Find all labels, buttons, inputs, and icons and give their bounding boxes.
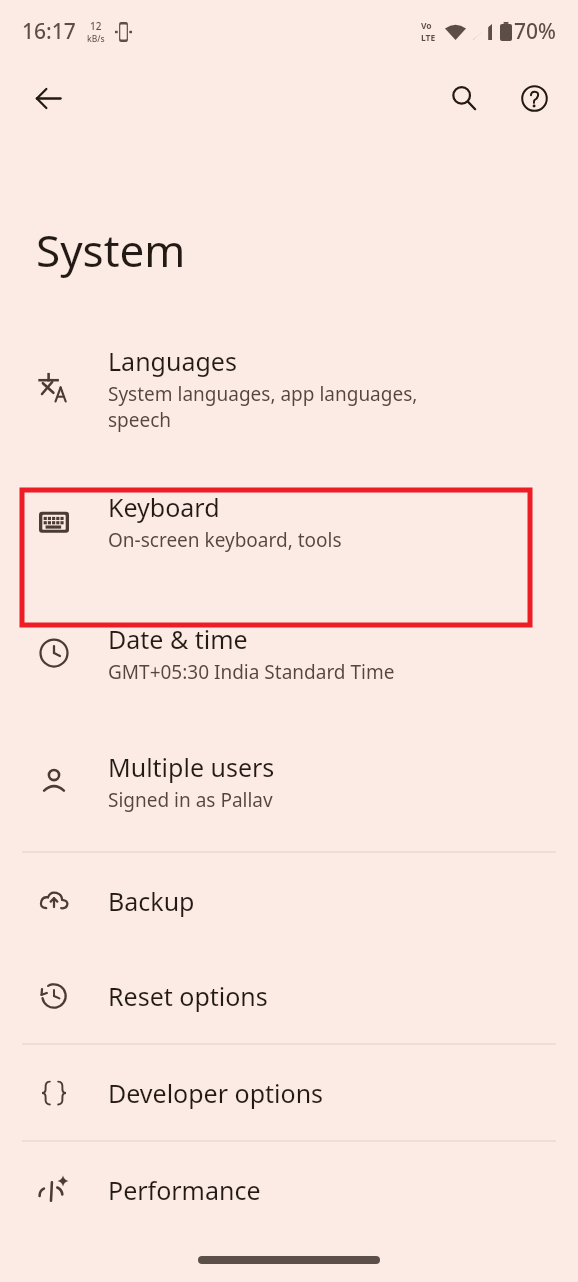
staticText: Developer options	[108, 1076, 324, 1110]
staticText: Performance	[108, 1173, 261, 1207]
staticText: Backup	[108, 884, 195, 918]
staticText: System	[36, 220, 186, 280]
staticText: 16:17	[22, 17, 76, 46]
staticText: GMT+05:30 India Standard Time	[108, 659, 395, 685]
staticText: Vo	[421, 20, 432, 32]
staticText: LTE	[421, 32, 436, 44]
staticText: System languages, app languages, speech	[108, 381, 418, 432]
staticText: Date & time	[108, 622, 248, 656]
button[interactable]: Developer options	[0, 1045, 578, 1140]
button[interactable]: Help	[508, 72, 560, 124]
button[interactable]: Performance	[0, 1142, 578, 1237]
button[interactable]: Date & time	[0, 589, 578, 717]
button[interactable]: Search	[438, 72, 490, 124]
staticText: On-screen keyboard, tools	[108, 527, 342, 553]
button[interactable]: Multiple users	[0, 717, 578, 845]
staticText: 70%	[514, 17, 556, 46]
staticText: kB/s	[87, 33, 105, 45]
staticText: Reset options	[108, 979, 268, 1013]
button[interactable]: Languages	[0, 322, 578, 454]
staticText: 12	[90, 19, 102, 33]
staticText: Keyboard	[108, 490, 220, 524]
button[interactable]: Backup	[0, 853, 578, 948]
staticText: Multiple users	[108, 750, 275, 784]
button[interactable]: Keyboard	[0, 454, 578, 589]
staticText: Languages	[108, 344, 237, 378]
button[interactable]: Back	[22, 72, 74, 124]
staticText: Signed in as Pallav	[108, 787, 273, 813]
button[interactable]: Reset options	[0, 948, 578, 1043]
